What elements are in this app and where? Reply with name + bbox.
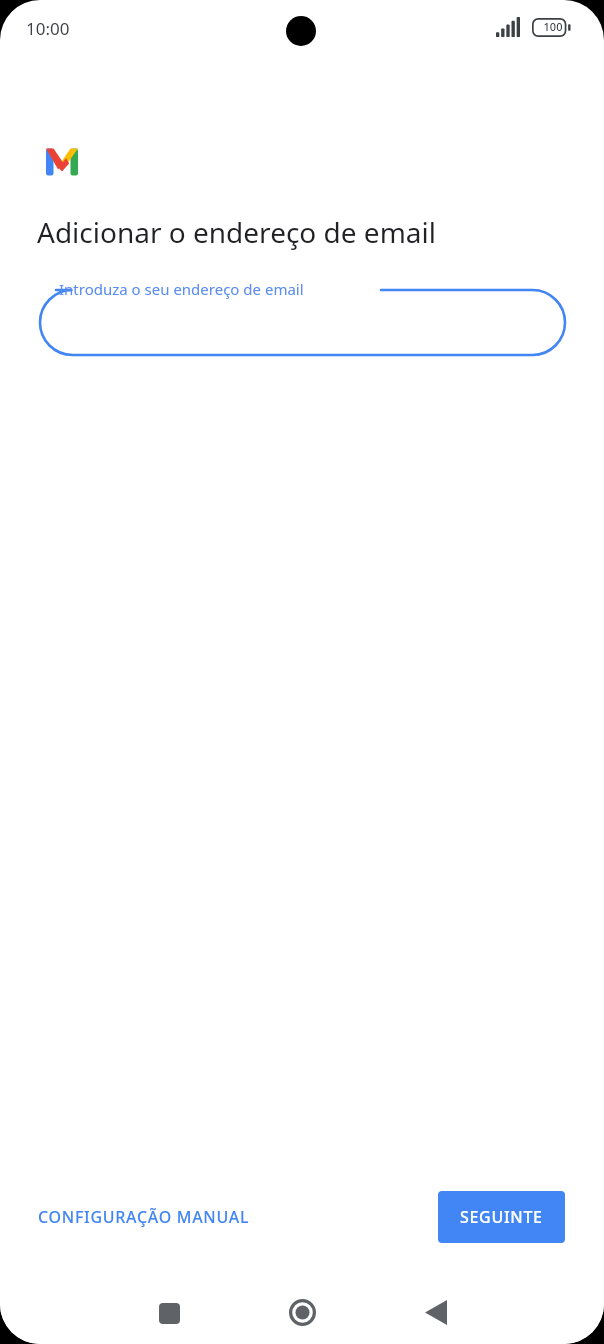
staticText: SEGUINTE — [460, 1206, 543, 1228]
staticText: CONFIGURAÇÃO MANUAL — [38, 1206, 250, 1228]
button[interactable]: CONFIGURAÇÃO MANUAL — [18, 1192, 270, 1242]
button[interactable]: Home — [278, 1288, 326, 1336]
staticText: 10:00 — [26, 17, 70, 40]
staticText: Adicionar o endereço de email — [37, 213, 437, 251]
staticText: Introduza o seu endereço de email — [59, 279, 304, 299]
button[interactable]: SEGUINTE — [438, 1191, 565, 1243]
button[interactable]: Recent apps — [145, 1289, 193, 1337]
button[interactable]: Introduza o seu endereço de email — [40, 274, 565, 370]
staticText: 100 — [538, 19, 568, 34]
button[interactable]: Back — [412, 1288, 460, 1336]
